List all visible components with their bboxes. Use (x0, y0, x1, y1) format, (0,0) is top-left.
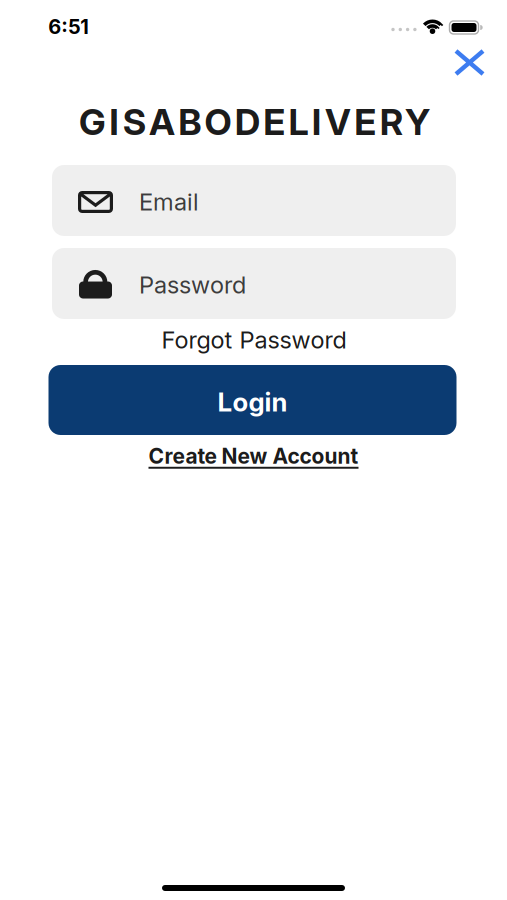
staticText: Login (217, 386, 287, 418)
staticText: Password (139, 270, 246, 299)
button[interactable]: Login (48, 365, 456, 435)
button[interactable]: Create New Account (148, 443, 358, 469)
button[interactable]: Forgot Password (161, 325, 346, 354)
staticText: Email (139, 187, 199, 216)
button[interactable]: Password (52, 248, 456, 319)
button[interactable] (447, 42, 491, 82)
staticText: 6:51 (48, 15, 89, 39)
staticText: Forgot Password (161, 325, 346, 354)
staticText: Create New Account (148, 443, 358, 469)
staticText: GISABODELIVERY (79, 100, 430, 144)
button[interactable]: Email (52, 165, 456, 236)
